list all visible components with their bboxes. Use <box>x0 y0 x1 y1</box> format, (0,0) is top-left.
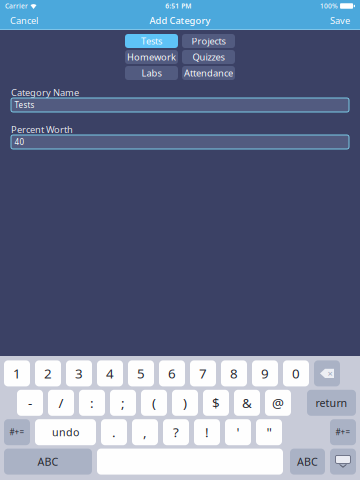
button[interactable]: Quizzes <box>182 50 235 64</box>
staticText: Category Name <box>11 86 79 99</box>
staticText: Cancel <box>10 14 38 27</box>
staticText: Homework <box>127 51 176 63</box>
button[interactable]: 3 <box>66 360 92 386</box>
button[interactable]: " <box>256 419 282 445</box>
button[interactable]: Delete <box>314 360 340 386</box>
staticText: ? <box>173 423 179 441</box>
button[interactable]: #+= <box>4 419 30 445</box>
button[interactable]: ABC <box>290 449 325 475</box>
button[interactable]: ; <box>110 390 136 416</box>
button[interactable]: , <box>132 419 158 445</box>
staticText: Quizzes <box>192 51 224 63</box>
button[interactable]: ) <box>172 390 198 416</box>
staticText: 5 <box>137 364 145 382</box>
button[interactable]: ! <box>194 419 220 445</box>
button[interactable]: ABC <box>4 449 92 475</box>
button[interactable] <box>97 449 283 475</box>
staticText: 100% <box>320 2 338 10</box>
button[interactable]: Labs <box>125 66 178 80</box>
staticText: 0 <box>292 364 300 382</box>
button[interactable]: / <box>48 390 74 416</box>
button[interactable]: Projects <box>182 34 235 48</box>
staticText: ( <box>152 394 156 412</box>
button[interactable]: $ <box>203 390 229 416</box>
staticText: Save <box>330 14 350 27</box>
staticText: - <box>28 394 32 412</box>
button[interactable]: ' <box>225 419 251 445</box>
staticText: Labs <box>141 67 161 79</box>
button[interactable]: . <box>101 419 127 445</box>
staticText: . <box>112 423 116 441</box>
staticText: , <box>143 423 147 441</box>
staticText: " <box>266 423 271 441</box>
staticText: & <box>242 394 252 412</box>
button[interactable]: Attendance <box>182 66 235 80</box>
staticText: 2 <box>44 364 52 382</box>
button[interactable]: 5 <box>128 360 154 386</box>
button[interactable]: 8 <box>221 360 247 386</box>
button[interactable]: Tests <box>125 34 178 48</box>
button[interactable]: Save <box>321 12 359 29</box>
button[interactable]: 4 <box>97 360 123 386</box>
staticText: return <box>315 396 347 410</box>
button[interactable]: Homework <box>125 50 178 64</box>
button[interactable]: : <box>79 390 105 416</box>
button[interactable]: & <box>234 390 260 416</box>
staticText: ' <box>236 423 239 441</box>
button[interactable]: 7 <box>190 360 216 386</box>
staticText: @ <box>272 394 284 412</box>
button[interactable]: @ <box>265 390 291 416</box>
button[interactable]: - <box>17 390 43 416</box>
staticText: Tests <box>14 100 34 110</box>
staticText: ) <box>183 394 187 412</box>
staticText: 9 <box>261 364 269 382</box>
staticText: : <box>90 394 94 412</box>
staticText: #+= <box>9 427 24 437</box>
staticText: 1 <box>13 364 21 382</box>
button[interactable]: #+= <box>330 419 356 445</box>
button[interactable]: Hide keyboard <box>330 449 356 475</box>
staticText: 6 <box>168 364 176 382</box>
staticText: 3 <box>75 364 83 382</box>
staticText: ABC <box>37 454 58 469</box>
button[interactable]: 6 <box>159 360 185 386</box>
staticText: ; <box>121 394 125 412</box>
button[interactable]: Cancel <box>1 12 47 29</box>
button[interactable]: ( <box>141 390 167 416</box>
staticText: #+= <box>335 427 350 437</box>
button[interactable]: ? <box>163 419 189 445</box>
staticText: ABC <box>297 454 318 469</box>
button[interactable]: 0 <box>283 360 309 386</box>
button[interactable]: return <box>307 390 356 416</box>
staticText: Projects <box>191 35 225 47</box>
staticText: 4 <box>106 364 114 382</box>
staticText: 40 <box>14 137 24 147</box>
staticText: $ <box>212 394 220 412</box>
staticText: × <box>327 367 332 380</box>
button[interactable]: 1 <box>4 360 30 386</box>
button[interactable]: undo <box>35 419 96 445</box>
button[interactable]: 9 <box>252 360 278 386</box>
staticText: Carrier <box>5 2 28 10</box>
staticText: Add Category <box>149 14 210 27</box>
staticText: Attendance <box>184 67 233 79</box>
staticText: 8 <box>230 364 238 382</box>
staticText: undo <box>52 425 79 439</box>
staticText: Percent Worth <box>11 123 73 136</box>
staticText: Tests <box>141 35 162 47</box>
staticText: 7 <box>199 364 207 382</box>
staticText: 6:51 PM <box>165 2 191 10</box>
staticText: ! <box>205 423 209 441</box>
staticText: / <box>58 394 63 412</box>
button[interactable]: 2 <box>35 360 61 386</box>
